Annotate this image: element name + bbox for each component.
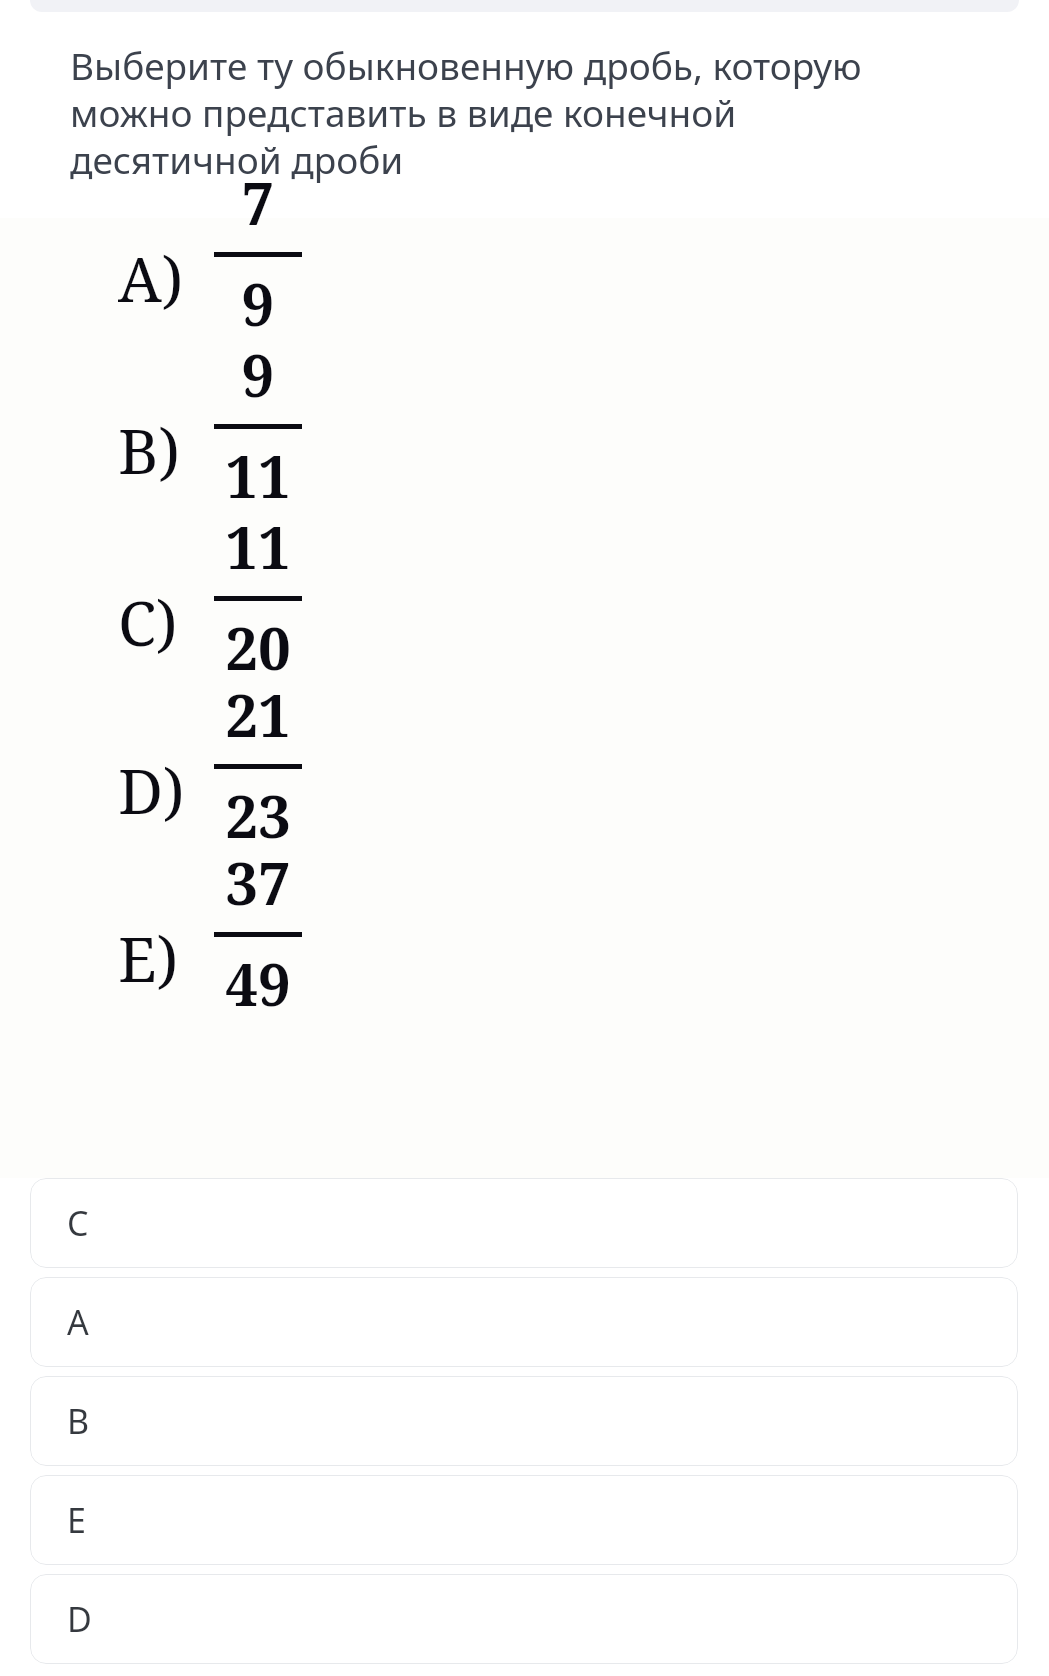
button[interactable]: Answer option B [30, 1376, 1018, 1466]
button[interactable]: Answer option D [30, 1574, 1018, 1664]
button[interactable]: Answer option E [30, 1475, 1018, 1565]
button[interactable]: Answer option C [30, 1178, 1018, 1268]
button[interactable]: Answer option A [30, 1277, 1018, 1367]
